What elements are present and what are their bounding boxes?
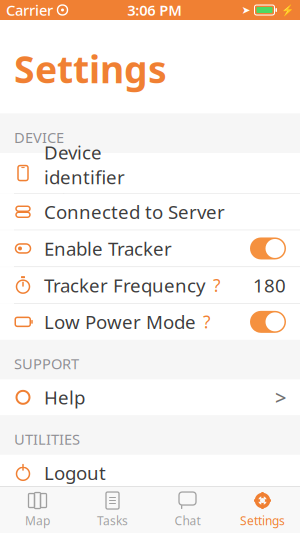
staticText: Map [25,512,50,528]
staticText: Tracker Frequency [44,273,206,298]
staticText: DEVICE [14,128,64,147]
staticText: Logout [44,460,106,485]
button[interactable]: Settings [225,486,300,533]
staticText: Carrier [6,0,53,20]
staticText: > [275,384,286,411]
staticText: 3:06 PM [127,0,182,20]
staticText: Connected to Server [44,199,225,224]
staticText: UTILITIES [14,429,80,449]
staticText: Help [44,385,85,410]
button[interactable]: Tasks [75,486,150,533]
button[interactable]: Logout [0,455,300,491]
button[interactable]: Low Power Mode [0,304,300,340]
staticText: ➤ [241,4,250,16]
staticText: SUPPORT [14,354,79,373]
staticText: Tasks [97,512,128,528]
staticText: 180 [253,273,286,298]
button[interactable]: Map [0,486,75,533]
staticText: Device identifier [44,140,125,189]
staticText: Enable Tracker [44,236,172,261]
staticText: ? [203,310,211,333]
staticText: reviewuser [44,190,106,206]
button[interactable]: Tracker Frequency [0,267,300,303]
button[interactable]: Device identifier [0,153,300,193]
staticText: Chat [174,512,200,528]
staticText: Low Power Mode [44,309,196,334]
button[interactable]: Help [0,379,300,415]
button[interactable]: Chat [150,486,225,533]
button[interactable]: Connected to Server [0,194,300,230]
staticText: Settings [240,512,285,528]
staticText: ? [213,274,221,297]
staticText: ⚡ [281,4,294,16]
staticText: Settings [14,44,167,94]
button[interactable]: Enable Tracker [0,230,300,266]
